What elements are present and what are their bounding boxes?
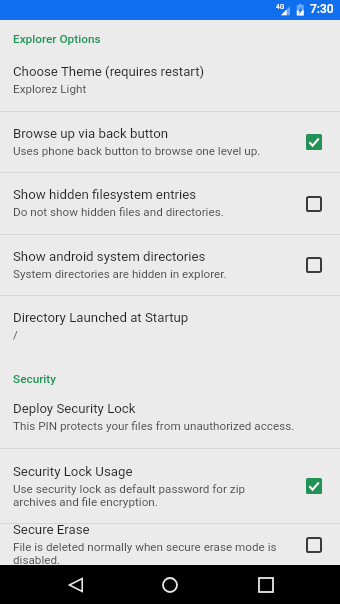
- staticText: Use security lock as default password fo…: [13, 482, 277, 509]
- staticText: Security: [13, 372, 57, 386]
- staticText: This PIN protects your files from unauth…: [13, 419, 295, 433]
- button[interactable]: Home: [122, 565, 217, 604]
- button[interactable]: Directory Launched at Startup: [0, 296, 340, 356]
- staticText: 7:30: [310, 2, 334, 16]
- staticText: 4G: [276, 3, 285, 11]
- button[interactable]: Security Lock Usage: [0, 449, 340, 523]
- staticText: Deploy Security Lock: [13, 401, 136, 417]
- staticText: Secure Erase: [13, 522, 90, 538]
- button[interactable]: Show android system directories: [0, 235, 340, 295]
- staticText: Show hidden filesystem entries: [13, 187, 197, 203]
- staticText: /: [13, 328, 18, 342]
- button[interactable]: Back: [28, 565, 122, 604]
- button[interactable]: Choose Theme (requires restart): [0, 50, 340, 111]
- staticText: Explorer Options: [13, 32, 101, 46]
- staticText: Show android system directories: [13, 249, 206, 265]
- button[interactable]: Browse up via back button: [0, 112, 340, 172]
- staticText: Choose Theme (requires restart): [13, 64, 205, 80]
- staticText: File is deleted normally when secure era…: [13, 540, 277, 567]
- button[interactable]: Secure Erase: [0, 508, 340, 582]
- button[interactable]: Recents: [218, 565, 313, 604]
- staticText: System directories are hidden in explore…: [13, 267, 227, 281]
- button[interactable]: Show hidden filesystem entries: [0, 173, 340, 234]
- button[interactable]: Deploy Security Lock: [0, 391, 340, 448]
- staticText: Directory Launched at Startup: [13, 310, 189, 326]
- staticText: Uses phone back button to browse one lev…: [13, 144, 261, 158]
- staticText: Browse up via back button: [13, 126, 169, 142]
- staticText: Security Lock Usage: [13, 464, 133, 480]
- staticText: Explorez Light: [13, 82, 87, 96]
- staticText: Do not show hidden files and directories…: [13, 205, 224, 219]
